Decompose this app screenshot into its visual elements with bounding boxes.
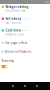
button[interactable]: Widget editing (0, 5, 50, 17)
button[interactable]: Home (7, 82, 19, 90)
button[interactable]: Fall asleep (0, 17, 50, 29)
button[interactable]: Allow notifications (0, 50, 48, 53)
staticText: 10:02 AM (21, 30, 27, 31)
staticText: Yesterday (1, 59, 13, 63)
button[interactable]: Raise to Wake toggle, on (1, 65, 8, 68)
staticText: Widget editing (5, 5, 28, 9)
staticText: Tap, Snooze (5, 21, 21, 24)
button[interactable]: Use page effect (0, 41, 48, 45)
staticText: Brewing now (5, 33, 23, 36)
staticText: 12:11 PM (22, 18, 28, 20)
staticText: Use page effect (5, 41, 27, 45)
button[interactable]: Cold brew (0, 29, 50, 41)
staticText: Fall asleep (5, 17, 21, 20)
staticText: Cold brew (5, 29, 20, 32)
staticText: Allow notifications (5, 50, 31, 53)
staticText: Rounded new (5, 9, 25, 12)
button[interactable]: Search (19, 82, 31, 90)
button[interactable]: Profile (31, 82, 43, 90)
